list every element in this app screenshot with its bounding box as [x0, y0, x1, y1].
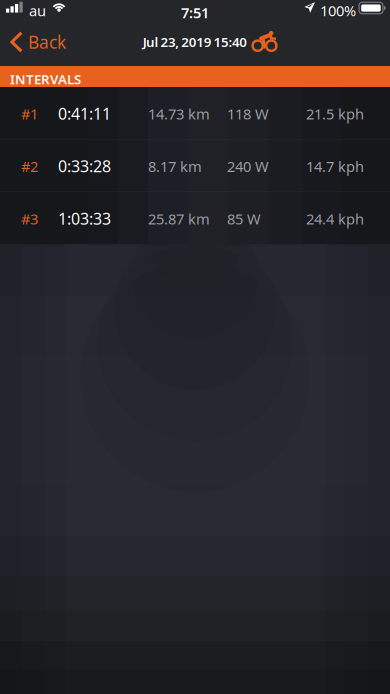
staticText: #1	[21, 104, 38, 123]
staticText: 14.7 kph	[306, 156, 364, 176]
staticText: #3	[21, 209, 38, 228]
staticText: 1:03:33	[58, 208, 111, 229]
staticText: 7:51	[181, 3, 209, 22]
staticText: 240 W	[227, 156, 269, 176]
staticText: #2	[21, 156, 38, 176]
staticText: 85 W	[227, 209, 261, 228]
staticText: INTERVALS	[10, 70, 81, 88]
staticText: Back	[28, 30, 66, 53]
staticText: 0:41:11	[58, 103, 111, 124]
staticText: 0:33:28	[58, 155, 111, 177]
staticText: Jul 23, 2019 15:40	[143, 33, 247, 51]
staticText: 100%	[320, 1, 356, 20]
staticText: 25.87 km	[148, 209, 210, 228]
staticText: 14.73 km	[148, 104, 210, 123]
button[interactable]: #1	[0, 87, 390, 139]
button[interactable]: Back	[0, 22, 76, 62]
staticText: 21.5 kph	[306, 104, 364, 123]
button[interactable]: #2	[0, 139, 390, 191]
staticText: 24.4 kph	[306, 209, 364, 228]
staticText: 8.17 km	[148, 156, 202, 176]
button[interactable]: #3	[0, 192, 390, 244]
staticText: 118 W	[227, 104, 269, 123]
staticText: au	[29, 1, 46, 20]
